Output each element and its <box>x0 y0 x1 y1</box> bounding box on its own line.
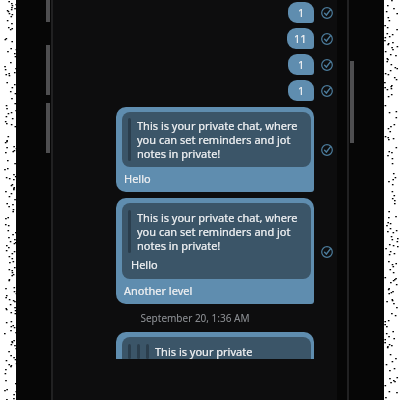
staticText: Another level <box>124 283 193 298</box>
staticText: This is your private chat, where you can… <box>137 210 303 253</box>
staticText: 1 <box>298 83 305 98</box>
button[interactable]: 1 <box>288 54 314 75</box>
staticText: Hello <box>124 171 151 186</box>
staticText: Hello <box>131 257 158 272</box>
button[interactable]: This is your private chat, where you can… <box>116 198 314 304</box>
button[interactable]: 11 <box>287 28 314 49</box>
staticText: 1 <box>298 57 305 72</box>
button[interactable]: Message read <box>319 57 334 72</box>
staticText: September 20, 1:36 AM <box>53 311 337 325</box>
button[interactable]: Message read <box>319 5 334 20</box>
button[interactable]: Message read <box>319 244 334 259</box>
button[interactable]: Message read <box>319 142 334 157</box>
button[interactable]: 1 <box>288 80 314 101</box>
button[interactable]: Message read <box>319 31 334 46</box>
staticText: 1 <box>298 5 305 20</box>
staticText: This is your private chat, where you can… <box>137 118 303 161</box>
staticText: This is your private <box>155 344 253 359</box>
button[interactable]: This is your private <box>116 332 314 359</box>
button[interactable]: 1 <box>288 2 314 23</box>
button[interactable]: Message read <box>319 83 334 98</box>
button[interactable]: This is your private chat, where you can… <box>116 107 314 192</box>
staticText: 11 <box>294 31 307 46</box>
